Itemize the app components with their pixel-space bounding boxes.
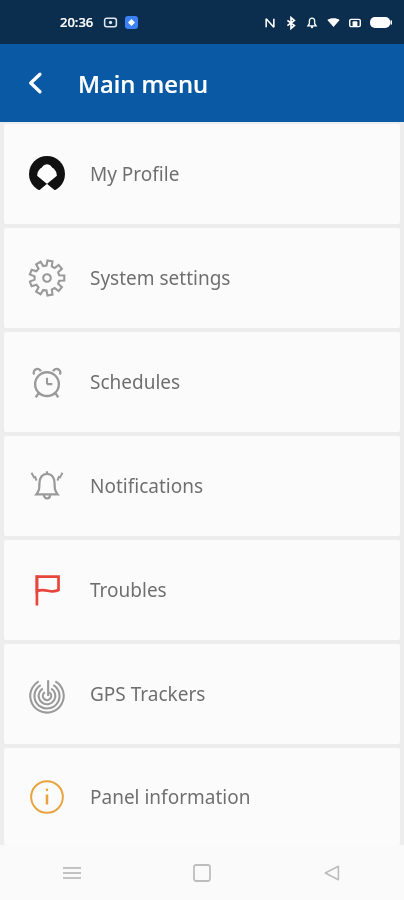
staticText: My Profile [90, 161, 180, 187]
staticText: 20:36 [60, 13, 94, 31]
staticText: Main menu [78, 67, 209, 100]
button[interactable]: Home [178, 849, 226, 897]
button[interactable]: Back [8, 55, 64, 111]
button[interactable]: Notifications [4, 436, 400, 536]
button[interactable]: System settings [4, 228, 400, 328]
button[interactable]: Recent apps [48, 849, 96, 897]
button[interactable]: GPS Trackers [4, 644, 400, 744]
staticText: Notifications [90, 473, 204, 499]
button[interactable]: Schedules [4, 332, 400, 432]
staticText: Schedules [90, 369, 181, 395]
staticText: Panel information [90, 784, 251, 810]
button[interactable]: Back [308, 849, 356, 897]
button[interactable]: Panel information [4, 748, 400, 845]
staticText: System settings [90, 265, 231, 291]
staticText: GPS Trackers [90, 681, 206, 707]
button[interactable]: My Profile [4, 124, 400, 224]
button[interactable]: Troubles [4, 540, 400, 640]
staticText: Troubles [90, 577, 167, 603]
